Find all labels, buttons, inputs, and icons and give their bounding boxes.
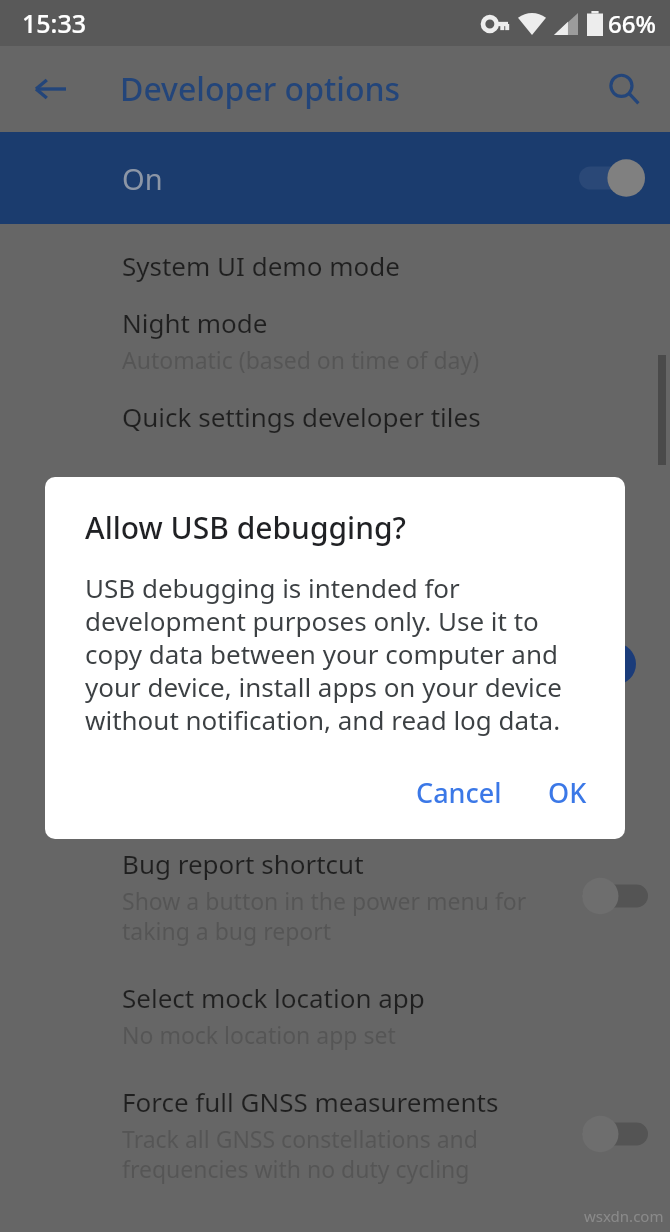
button[interactable]: Back [24, 63, 76, 115]
staticText: Select mock location app [122, 980, 425, 1015]
button[interactable]: On [0, 132, 670, 224]
button[interactable]: Night mode [0, 283, 670, 375]
staticText: Bug report shortcut [122, 846, 364, 881]
staticText: Track all GNSS constellations and freque… [122, 1123, 478, 1184]
staticText: On [122, 159, 163, 198]
staticText: Automatic (based on time of day) [122, 344, 480, 375]
staticText: Cancel [416, 774, 502, 811]
button[interactable]: Search [598, 63, 650, 115]
staticText: Night mode [122, 305, 268, 340]
staticText: OK [548, 774, 587, 811]
staticText: Quick settings developer tiles [122, 399, 481, 434]
button[interactable]: Force full GNSS measurements [0, 1050, 670, 1184]
staticText: Developer options [120, 67, 401, 111]
button[interactable]: System UI demo mode [0, 234, 670, 283]
button[interactable]: Quick settings developer tiles [0, 375, 670, 434]
staticText: wsxdn.com [584, 1206, 664, 1226]
staticText: Show a button in the power menu for taki… [122, 885, 527, 946]
staticText: System UI demo mode [122, 248, 400, 283]
button[interactable]: Toggle Bug report shortcut [578, 873, 652, 919]
button[interactable]: Bug report shortcut [0, 838, 670, 946]
staticText: No mock location app set [122, 1019, 396, 1050]
staticText: 66% [608, 7, 656, 40]
staticText: USB debugging is intended for developmen… [85, 570, 595, 738]
staticText: 15:33 [22, 6, 87, 40]
button[interactable]: Select mock location app [0, 946, 670, 1050]
staticText: Force full GNSS measurements [122, 1084, 499, 1119]
button[interactable]: Cancel [400, 762, 518, 823]
button[interactable]: Developer options on [572, 152, 652, 204]
button[interactable]: Toggle Force full GNSS measurements [578, 1111, 652, 1157]
staticText: Allow USB debugging? [85, 507, 406, 548]
button[interactable]: OK [532, 762, 603, 823]
